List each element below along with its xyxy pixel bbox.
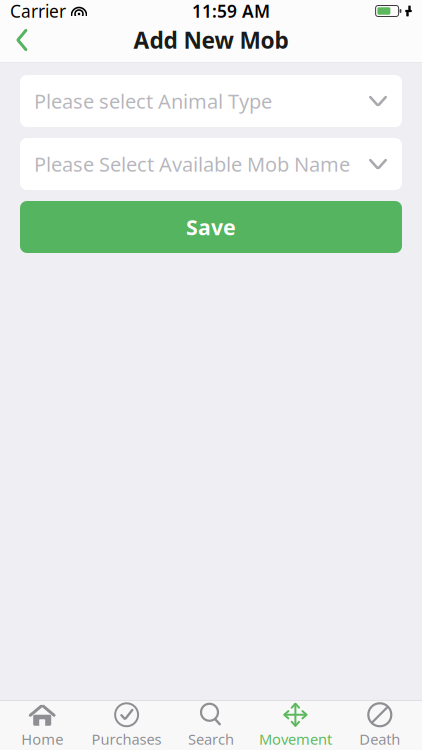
button[interactable]: Please Select Available Mob Name bbox=[20, 138, 402, 190]
staticText: Home bbox=[21, 729, 63, 749]
staticText: Add New Mob bbox=[133, 25, 288, 55]
button[interactable]: Death bbox=[338, 701, 422, 750]
staticText: Carrier bbox=[10, 0, 66, 22]
staticText: Movement bbox=[259, 729, 332, 749]
button[interactable]: Movement bbox=[253, 701, 338, 750]
button[interactable]: Purchases bbox=[84, 701, 169, 750]
staticText: Please select Animal Type bbox=[34, 88, 272, 114]
button[interactable]: Save bbox=[20, 201, 402, 253]
staticText: Search bbox=[188, 729, 234, 749]
staticText: Please Select Available Mob Name bbox=[34, 151, 350, 177]
staticText: Death bbox=[359, 729, 400, 749]
button[interactable]: Search bbox=[169, 701, 253, 750]
button[interactable]: Home bbox=[0, 701, 84, 750]
staticText: Save bbox=[186, 213, 236, 241]
button[interactable]: Please select Animal Type bbox=[20, 75, 402, 127]
staticText: Purchases bbox=[92, 729, 162, 749]
staticText: 11:59 AM bbox=[192, 0, 270, 22]
button[interactable]: Back bbox=[0, 22, 44, 58]
